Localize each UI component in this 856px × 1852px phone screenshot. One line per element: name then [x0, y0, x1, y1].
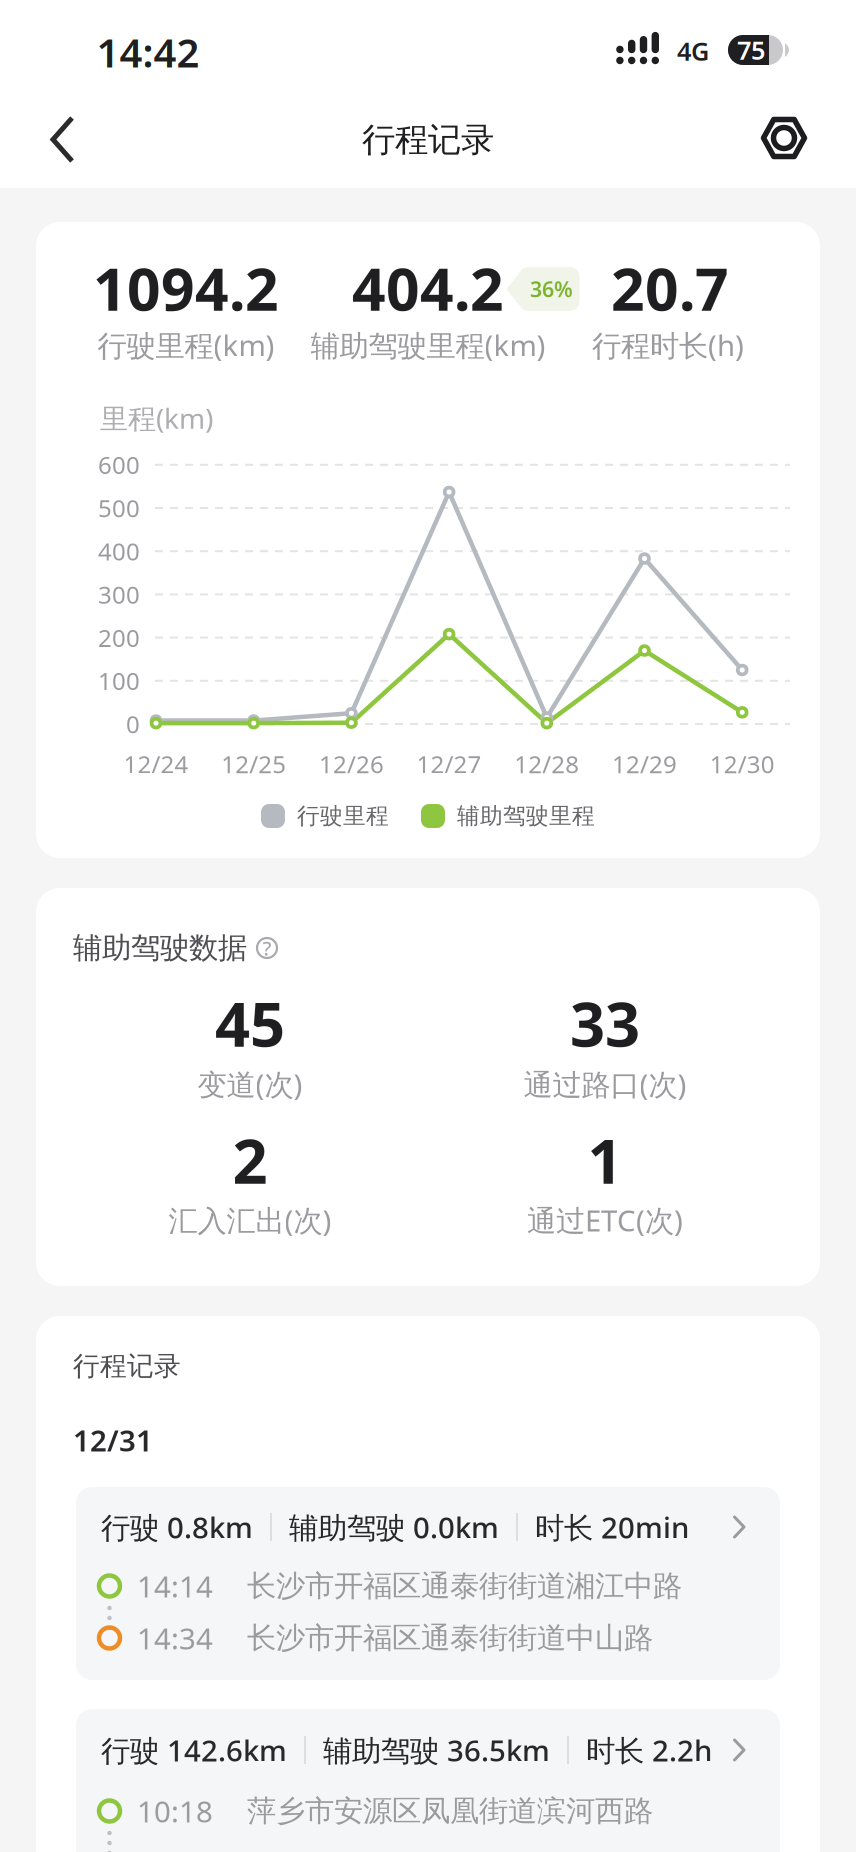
staticText: 变道(次)	[197, 1064, 302, 1103]
staticText: 辅助驾驶 36.5km	[323, 1730, 550, 1769]
staticText: 辅助驾驶里程	[457, 802, 595, 830]
staticText: 1	[587, 1119, 622, 1201]
staticText: 行程时长(h)	[592, 325, 744, 364]
staticText: 45	[215, 982, 285, 1064]
staticText: 行程记录	[362, 119, 494, 160]
staticText: 75	[737, 33, 765, 67]
staticText: 行程记录	[73, 1350, 181, 1382]
staticText: 长沙市开福区通泰街街道中山路	[247, 1620, 653, 1656]
staticText: 300	[98, 578, 140, 610]
staticText: 12/29	[612, 748, 677, 780]
staticText: ?	[262, 935, 271, 961]
staticText: 汇入汇出(次)	[168, 1200, 331, 1239]
staticText: 14:42	[96, 25, 199, 78]
staticText: 行驶里程	[297, 802, 389, 830]
staticText: 14:14	[137, 1566, 213, 1605]
staticText: 12/25	[221, 748, 286, 780]
button[interactable]: 行驶 0.8km	[76, 1487, 780, 1680]
staticText: 里程(km)	[100, 399, 213, 437]
staticText: 通过ETC(次)	[527, 1200, 683, 1239]
staticText: 辅助驾驶里程(km)	[310, 325, 545, 364]
staticText: 600	[98, 449, 140, 481]
staticText: 500	[98, 492, 140, 524]
staticText: 404.2	[352, 249, 504, 327]
staticText: 200	[98, 622, 140, 654]
staticText: 通过路口(次)	[523, 1064, 686, 1103]
staticText: 400	[98, 535, 140, 567]
staticText: 行驶 0.8km	[101, 1507, 253, 1546]
staticText: 辅助驾驶 0.0km	[289, 1507, 499, 1546]
staticText: 2	[232, 1119, 267, 1201]
staticText: 12/28	[514, 748, 579, 780]
button[interactable]: Back	[0, 101, 96, 177]
staticText: 辅助驾驶数据	[73, 930, 247, 966]
button[interactable]: Help	[256, 937, 278, 959]
staticText: 36%	[530, 275, 573, 303]
staticText: 1094.2	[93, 249, 279, 327]
button[interactable]: 行驶 142.6km	[76, 1709, 780, 1852]
staticText: 10:18	[137, 1791, 213, 1830]
staticText: 12/26	[319, 748, 384, 780]
staticText: 行驶里程(km)	[97, 325, 274, 364]
staticText: 时长 20min	[535, 1507, 689, 1546]
staticText: 0	[126, 708, 140, 740]
staticText: 萍乡市安源区凤凰街道滨河西路	[247, 1793, 653, 1829]
staticText: 33	[570, 982, 640, 1064]
staticText: 12/27	[417, 748, 482, 780]
staticText: 12/30	[710, 748, 775, 780]
staticText: 4G	[677, 34, 709, 68]
staticText: 行驶 142.6km	[101, 1730, 287, 1769]
staticText: 14:34	[137, 1618, 213, 1657]
staticText: 长沙市开福区通泰街街道湘江中路	[247, 1568, 682, 1604]
staticText: 12/24	[123, 748, 188, 780]
staticText: 20.7	[611, 249, 729, 327]
staticText: 时长 2.2h	[586, 1730, 712, 1769]
staticText: 100	[98, 665, 140, 697]
button[interactable]: Settings	[736, 101, 832, 177]
staticText: 12/31	[73, 1420, 153, 1459]
